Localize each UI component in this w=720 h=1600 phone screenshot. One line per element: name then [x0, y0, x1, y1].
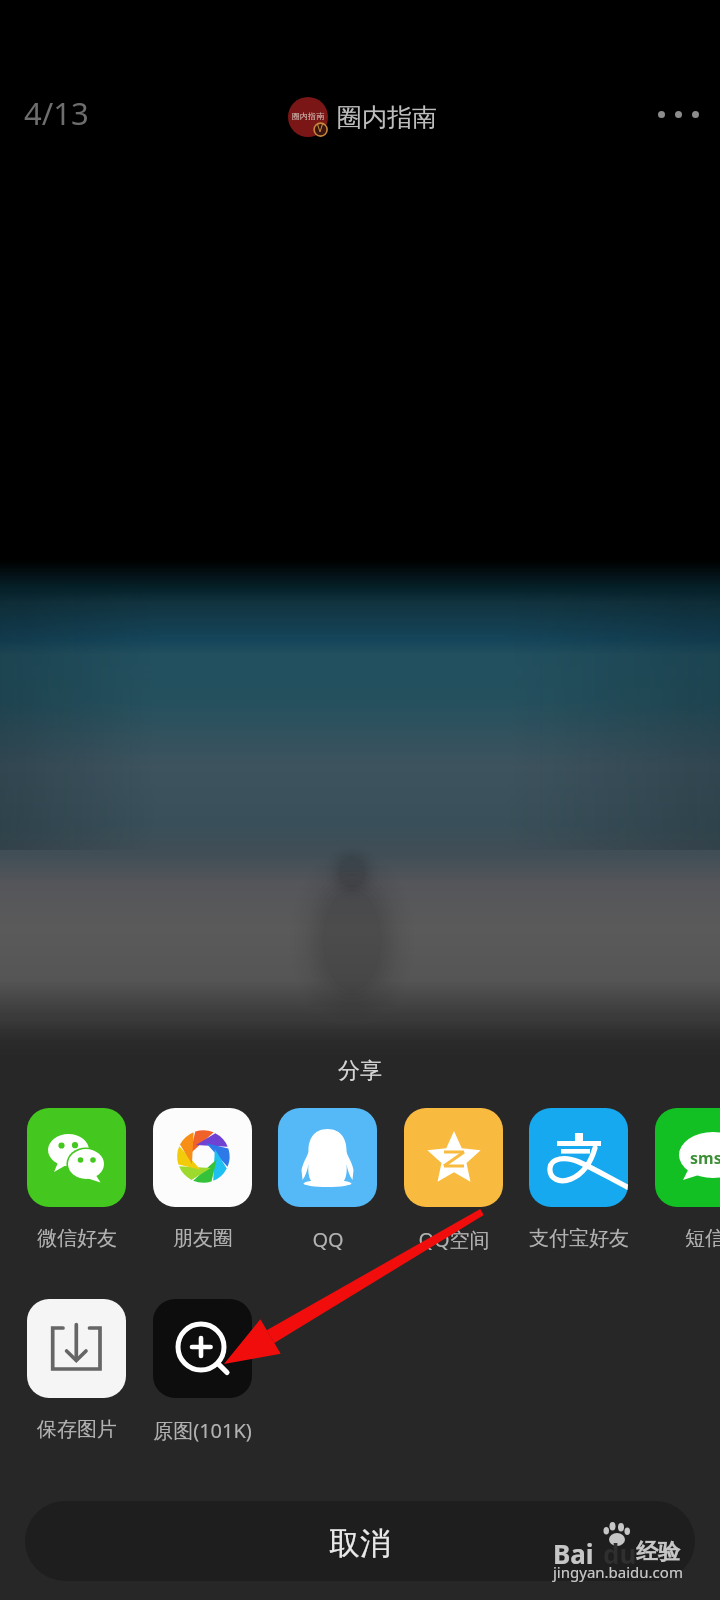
- staticText: V: [317, 121, 323, 135]
- staticText: 原图(101K): [153, 1417, 252, 1444]
- button[interactable]: 支付宝好友: [529, 1108, 628, 1207]
- staticText: 圈内指南: [292, 111, 324, 121]
- staticText: 保存图片: [37, 1417, 117, 1442]
- button[interactable]: 圈内指南: [287, 96, 437, 138]
- staticText: jingyan.baidu.com: [553, 1562, 683, 1582]
- staticText: 微信好友: [37, 1226, 117, 1251]
- button[interactable]: 朋友圈: [153, 1108, 252, 1207]
- button[interactable]: 微信好友: [27, 1108, 126, 1207]
- staticText: 取消: [329, 1524, 391, 1563]
- button[interactable]: 取消: [25, 1501, 695, 1581]
- staticText: QQ: [312, 1226, 344, 1253]
- staticText: Bai: [553, 1536, 594, 1571]
- staticText: 朋友圈: [173, 1226, 233, 1251]
- button[interactable]: QQ空间: [404, 1108, 503, 1207]
- staticText: 支付宝好友: [529, 1226, 628, 1251]
- button[interactable]: 保存图片: [27, 1299, 126, 1398]
- button[interactable]: QQ: [278, 1108, 377, 1207]
- staticText: 圈内指南: [337, 102, 437, 133]
- staticText: 短信: [685, 1226, 720, 1251]
- staticText: du: [603, 1536, 637, 1571]
- staticText: QQ空间: [418, 1226, 490, 1253]
- staticText: 4/13: [24, 92, 89, 134]
- staticText: 经验: [636, 1538, 680, 1566]
- staticText: sms: [690, 1147, 720, 1169]
- button[interactable]: sms: [655, 1108, 720, 1207]
- staticText: 分享: [0, 1057, 720, 1085]
- button[interactable]: 原图(101K): [153, 1299, 252, 1398]
- button[interactable]: More options: [648, 89, 709, 139]
